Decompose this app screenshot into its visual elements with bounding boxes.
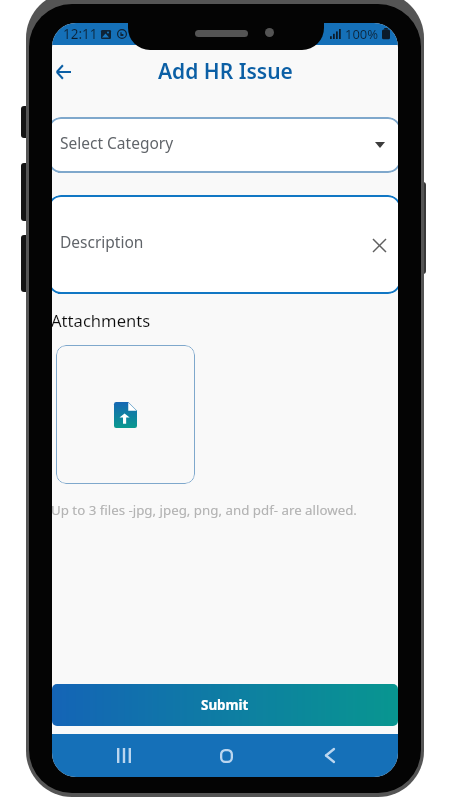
button[interactable]: Description: [52, 195, 398, 294]
button[interactable]: Upload file: [56, 345, 195, 484]
button[interactable]: Back: [52, 59, 76, 85]
button[interactable]: Back: [305, 737, 354, 774]
button[interactable]: Submit: [52, 684, 398, 726]
staticText: 12:11: [63, 25, 98, 43]
button[interactable]: Home: [202, 737, 251, 774]
staticText: 100%: [345, 25, 379, 43]
staticText: Add HR Issue: [158, 57, 293, 86]
button[interactable]: Recent apps: [99, 737, 148, 774]
staticText: Submit: [201, 696, 249, 714]
staticText: Attachments: [52, 309, 151, 332]
staticText: Up to 3 files -jpg, jpeg, png, and pdf- …: [52, 501, 357, 519]
button[interactable]: Select Category: [52, 117, 398, 173]
button[interactable]: Clear description: [367, 233, 391, 257]
staticText: Select Category: [60, 132, 174, 153]
staticText: Description: [60, 231, 144, 252]
